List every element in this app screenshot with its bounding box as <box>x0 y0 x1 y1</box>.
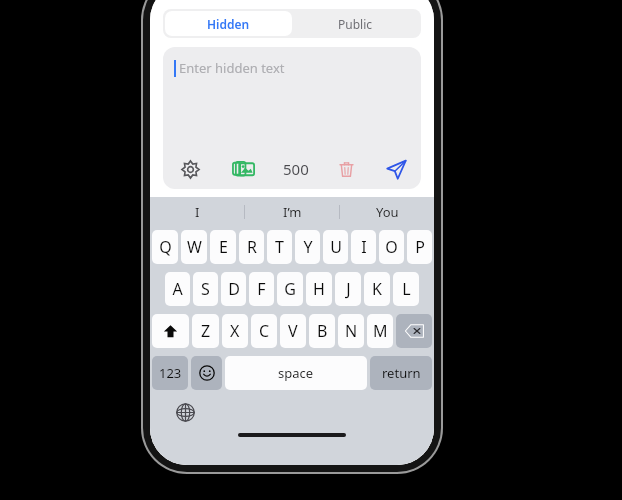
button[interactable]: G <box>277 272 303 306</box>
button[interactable]: Settings <box>175 154 205 184</box>
staticText: 123 <box>159 364 182 382</box>
button[interactable]: J <box>335 272 361 306</box>
button[interactable]: L <box>393 272 419 306</box>
staticText: H <box>313 278 325 300</box>
staticText: X <box>230 320 240 342</box>
button[interactable]: I <box>150 197 244 227</box>
button[interactable]: Backspace <box>396 314 432 348</box>
button[interactable]: Z <box>192 314 219 348</box>
button[interactable]: Hidden <box>165 11 292 36</box>
button[interactable]: return <box>370 356 432 390</box>
staticText: Z <box>201 320 211 342</box>
staticText: R <box>247 236 257 258</box>
button[interactable]: D <box>221 272 246 306</box>
button[interactable]: You <box>340 197 434 227</box>
button[interactable]: Public <box>292 11 419 36</box>
staticText: Public <box>338 16 373 32</box>
button[interactable]: F <box>249 272 274 306</box>
button[interactable]: C <box>251 314 277 348</box>
button[interactable]: space <box>225 356 367 390</box>
button[interactable]: Delete <box>331 154 361 184</box>
staticText: O <box>385 236 398 258</box>
button[interactable]: R <box>239 230 264 264</box>
staticText: Hidden <box>207 16 250 32</box>
staticText: I <box>195 203 200 221</box>
button[interactable]: Shift <box>152 314 189 348</box>
staticText: W <box>187 236 202 258</box>
staticText: You <box>376 203 399 221</box>
button[interactable]: B <box>309 314 335 348</box>
staticText: Q <box>159 236 172 258</box>
button[interactable]: Enter hidden text <box>163 47 421 189</box>
button[interactable]: U <box>323 230 348 264</box>
staticText: I <box>361 236 367 258</box>
staticText: 500 <box>283 159 309 179</box>
button[interactable]: H <box>306 272 332 306</box>
button[interactable]: K <box>364 272 390 306</box>
button[interactable]: Send <box>383 153 409 185</box>
staticText: A <box>172 278 183 300</box>
button[interactable]: Add photo <box>227 152 261 186</box>
button[interactable]: Emoji <box>191 356 222 390</box>
staticText: D <box>228 278 240 300</box>
button[interactable]: M <box>367 314 393 348</box>
staticText: J <box>346 278 351 300</box>
staticText: C <box>259 320 270 342</box>
button[interactable]: X <box>222 314 248 348</box>
staticText: S <box>201 278 210 300</box>
staticText: K <box>372 278 382 300</box>
button[interactable]: 123 <box>152 356 188 390</box>
button[interactable]: P <box>407 230 432 264</box>
staticText: I’m <box>283 203 302 221</box>
staticText: V <box>288 320 298 342</box>
staticText: U <box>330 236 342 258</box>
button[interactable]: A <box>165 272 190 306</box>
staticText: N <box>345 320 358 342</box>
staticText: M <box>373 320 388 342</box>
button[interactable]: Q <box>152 230 178 264</box>
staticText: B <box>317 320 328 342</box>
button[interactable]: V <box>280 314 306 348</box>
staticText: Enter hidden text <box>179 59 285 77</box>
button[interactable]: E <box>210 230 236 264</box>
staticText: Y <box>303 236 313 258</box>
staticText: L <box>402 278 411 300</box>
button[interactable]: I <box>351 230 376 264</box>
button[interactable]: S <box>193 272 218 306</box>
staticText: P <box>415 236 425 258</box>
button[interactable]: I’m <box>245 197 339 227</box>
staticText: G <box>284 278 296 300</box>
staticText: F <box>257 278 266 300</box>
staticText: return <box>382 364 421 382</box>
staticText: E <box>219 236 228 258</box>
button[interactable]: O <box>379 230 404 264</box>
button[interactable]: N <box>338 314 364 348</box>
button[interactable]: Y <box>295 230 320 264</box>
button[interactable]: Switch keyboard <box>172 399 198 425</box>
button[interactable]: W <box>181 230 207 264</box>
button[interactable]: T <box>267 230 292 264</box>
staticText: T <box>275 236 284 258</box>
staticText: space <box>278 364 314 382</box>
